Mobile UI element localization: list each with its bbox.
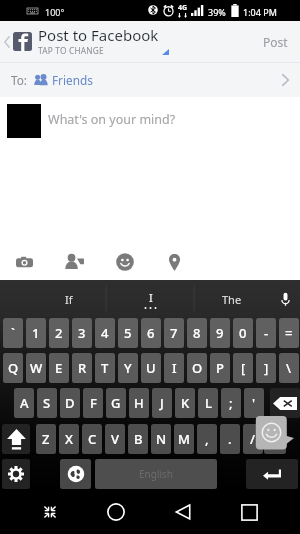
button[interactable]: L <box>198 388 218 418</box>
button[interactable]: C <box>82 424 102 454</box>
button[interactable]: Recent apps <box>233 496 265 528</box>
staticText: W <box>30 359 43 377</box>
staticText: L <box>205 394 212 412</box>
button[interactable]: Space <box>95 459 217 489</box>
button[interactable]: 8 <box>187 318 207 348</box>
staticText: R <box>78 359 87 377</box>
staticText: The <box>222 292 242 307</box>
button[interactable]: Shift <box>2 424 30 454</box>
button[interactable]: 6 <box>141 318 161 348</box>
button[interactable]: D <box>60 388 80 418</box>
button[interactable]: 7 <box>164 318 184 348</box>
button[interactable]: W <box>26 353 46 383</box>
button[interactable]: , <box>197 424 217 454</box>
button[interactable]: 9 <box>210 318 230 348</box>
staticText: ] <box>264 359 269 377</box>
button[interactable]: 3 <box>72 318 92 348</box>
staticText: ' <box>252 394 256 412</box>
staticText: , <box>205 430 209 448</box>
button[interactable]: S <box>37 388 57 418</box>
button[interactable]: Add photo <box>0 244 49 280</box>
staticText: B <box>134 430 143 448</box>
button[interactable]: 1 <box>26 318 46 348</box>
staticText: If <box>65 292 73 307</box>
button[interactable]: Z <box>36 424 56 454</box>
staticText: 39% <box>208 6 226 18</box>
button[interactable]: T <box>95 353 115 383</box>
staticText: H <box>134 394 144 412</box>
staticText: / <box>250 430 256 448</box>
button[interactable]: Feeling <box>100 244 149 280</box>
button[interactable]: O <box>187 353 207 383</box>
staticText: 6 <box>147 324 155 342</box>
staticText: Y <box>124 359 132 377</box>
staticText: [ <box>241 359 246 377</box>
button[interactable]: Collapse keyboard <box>34 496 66 528</box>
button[interactable]: P <box>210 353 230 383</box>
staticText: ` <box>11 324 15 342</box>
button[interactable]: ; <box>221 388 241 418</box>
button[interactable]: Voice input <box>270 280 300 318</box>
button[interactable]: 2 <box>49 318 69 348</box>
button[interactable]: Enter <box>246 459 298 489</box>
staticText: TAP TO CHANGE <box>38 45 104 56</box>
button[interactable]: If <box>32 280 106 318</box>
staticText: J <box>160 394 164 412</box>
button[interactable]: \ <box>279 353 299 383</box>
button[interactable]: I <box>106 280 194 318</box>
button[interactable]: 0 <box>233 318 253 348</box>
button[interactable]: To: <box>0 63 300 97</box>
button[interactable]: F <box>83 388 103 418</box>
button[interactable]: Settings <box>2 459 30 489</box>
button[interactable]: The <box>194 280 270 318</box>
button[interactable]: Check in <box>150 244 199 280</box>
button[interactable]: K <box>175 388 195 418</box>
button[interactable]: Home <box>100 496 132 528</box>
button[interactable]: / <box>243 424 263 454</box>
button[interactable]: [ <box>233 353 253 383</box>
button[interactable]: - <box>256 318 276 348</box>
staticText: D <box>65 394 75 412</box>
staticText: F <box>90 394 97 412</box>
button[interactable]: Backspace <box>270 388 300 418</box>
button[interactable]: Back <box>167 496 199 528</box>
button[interactable]: Change language <box>60 459 91 489</box>
staticText: C <box>88 430 97 448</box>
button[interactable]: . <box>220 424 240 454</box>
button[interactable]: E <box>49 353 69 383</box>
staticText: O <box>192 359 203 377</box>
staticText: = <box>285 324 293 342</box>
button[interactable]: Y <box>118 353 138 383</box>
button[interactable]: Post <box>251 21 300 62</box>
button[interactable]: I <box>164 353 184 383</box>
button[interactable]: H <box>129 388 149 418</box>
button[interactable]: M <box>174 424 194 454</box>
button[interactable]: J <box>152 388 172 418</box>
button[interactable]: N <box>151 424 171 454</box>
button[interactable]: B <box>128 424 148 454</box>
button[interactable]: Tag people <box>50 244 99 280</box>
button[interactable]: U <box>141 353 161 383</box>
button[interactable]: = <box>279 318 299 348</box>
staticText: Friends <box>52 72 93 88</box>
button[interactable]: 4 <box>95 318 115 348</box>
button[interactable]: 5 <box>118 318 138 348</box>
button[interactable]: ` <box>3 318 23 348</box>
button[interactable]: Emoji <box>264 424 286 454</box>
button[interactable]: ] <box>256 353 276 383</box>
button[interactable]: X <box>59 424 79 454</box>
staticText: P <box>216 359 224 377</box>
staticText: 5 <box>124 324 132 342</box>
button[interactable]: A <box>14 388 34 418</box>
staticText: S <box>43 394 51 412</box>
staticText: Post <box>263 34 288 50</box>
staticText: I <box>149 290 153 305</box>
button[interactable]: G <box>106 388 126 418</box>
button[interactable]: Q <box>3 353 23 383</box>
button[interactable]: V <box>105 424 125 454</box>
staticText: 4 <box>101 324 109 342</box>
button[interactable]: ' <box>244 388 264 418</box>
button[interactable]: R <box>72 353 92 383</box>
button[interactable]: Back <box>0 21 13 62</box>
